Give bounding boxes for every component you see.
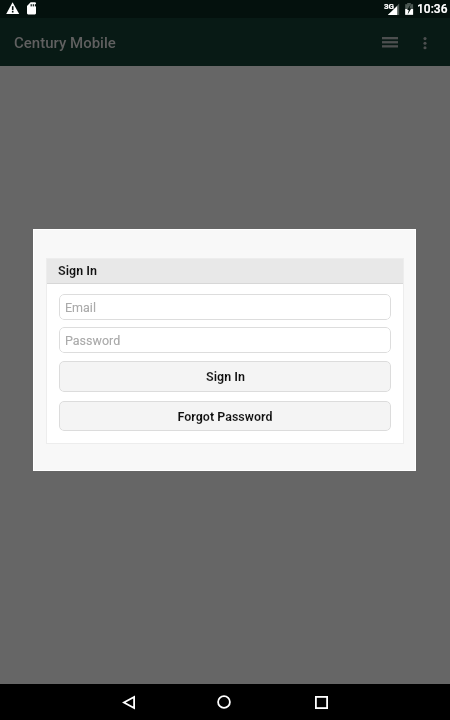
button[interactable]: Password [59, 327, 391, 353]
staticText: Sign In [206, 369, 245, 384]
staticText: Century Mobile [14, 34, 116, 52]
staticText: 10:36 [417, 2, 448, 16]
button[interactable]: Forgot Password [59, 401, 391, 431]
button[interactable]: Email [59, 294, 391, 320]
button[interactable]: Recent apps [299, 684, 343, 720]
button[interactable]: Sign In [59, 361, 391, 392]
button[interactable]: Menu [371, 24, 408, 61]
staticText: 3G [384, 2, 395, 11]
staticText: Forgot Password [177, 409, 273, 424]
button[interactable]: Home [202, 684, 246, 720]
button[interactable]: More options [407, 25, 442, 60]
staticText: Sign In [58, 263, 97, 278]
staticText: Email [65, 300, 96, 315]
button[interactable]: Back [107, 684, 151, 720]
staticText: Password [65, 333, 121, 348]
